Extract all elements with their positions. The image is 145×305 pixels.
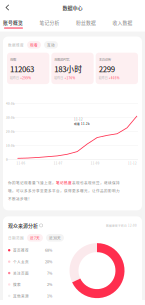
button[interactable]: 账号概览 (3, 15, 39, 32)
staticText: 首页推荐 (13, 248, 29, 253)
staticText: 近30天 (49, 235, 61, 240)
button[interactable]: 粉丝数据 (76, 15, 112, 32)
button[interactable]: 互动 (44, 41, 58, 49)
staticText: 30.0k (6, 115, 15, 120)
button[interactable]: 近7天 (27, 234, 43, 242)
staticText: 11-12 (74, 117, 83, 121)
staticText: 主页访客 (99, 57, 111, 62)
staticText: 数据更新于昨日 12:00 (106, 223, 137, 227)
button[interactable]: 收入数据 (112, 15, 145, 32)
staticText: 个人主页 (13, 259, 29, 264)
staticText: 2% (47, 282, 52, 287)
staticText: 搜索 (13, 282, 21, 287)
staticText: 183小时 (54, 63, 82, 74)
button[interactable]: 近30天 (46, 234, 64, 242)
staticText: 11-06 (16, 161, 25, 165)
staticText: 观看总时长 (54, 57, 69, 62)
staticText: 互动 (47, 42, 55, 47)
staticText: 表现也表现优异，继续保持 (72, 180, 120, 185)
staticText: 日期范围 (8, 235, 24, 240)
staticText: 哦。可以多多分享至更多平台，获得更多曝光，让作品的影响力 (8, 188, 120, 193)
staticText: 0 (6, 157, 8, 162)
staticText: 观众来源分析 (8, 222, 38, 229)
staticText: +176% (64, 76, 75, 80)
staticText: 20.0k (6, 129, 15, 134)
staticText: 较昨日 (99, 76, 108, 80)
staticText: 粉丝数据 (76, 19, 96, 26)
staticText: 你的笔记观看量飞速上涨， (8, 180, 56, 185)
staticText: 不断进步哦！ (8, 196, 32, 201)
staticText: 11-12 (128, 161, 137, 165)
button[interactable]: Info (39, 224, 43, 227)
staticText: 笔记分析 (39, 19, 59, 26)
button[interactable]: 笔记分析 (39, 15, 76, 32)
staticText: 近7天 (30, 235, 40, 240)
staticText: 7% (47, 270, 52, 276)
staticText: 较昨日 (54, 76, 63, 80)
staticText: 数据维度 (8, 42, 24, 47)
staticText: 2299 (99, 63, 115, 74)
button[interactable]: 观看 (27, 41, 41, 49)
staticText: 观看 (30, 42, 38, 47)
staticText: 其他来源 (13, 293, 29, 298)
staticText: 关注页面 (13, 270, 29, 276)
button[interactable]: Back (2, 1, 13, 14)
staticText: 账号概览 (3, 19, 23, 26)
staticText: 1% (47, 293, 52, 298)
staticText: 观看 (10, 57, 16, 62)
staticText: 10.0k (6, 143, 15, 148)
staticText: +299% (20, 76, 31, 80)
staticText: 笔记热度 (56, 180, 72, 185)
staticText: 观看 11.2k (74, 122, 90, 126)
staticText: 40.0k (6, 101, 15, 106)
staticText: 收入数据 (112, 19, 132, 26)
staticText: 11-09 (91, 161, 100, 165)
staticText: 11-07 (54, 161, 63, 165)
staticText: 68% (45, 248, 52, 253)
staticText: 数据中心 (62, 4, 82, 11)
staticText: 20% (45, 259, 52, 264)
staticText: +403% (109, 76, 120, 80)
staticText: 112063 (10, 63, 34, 74)
staticText: 较昨日 (10, 76, 19, 80)
